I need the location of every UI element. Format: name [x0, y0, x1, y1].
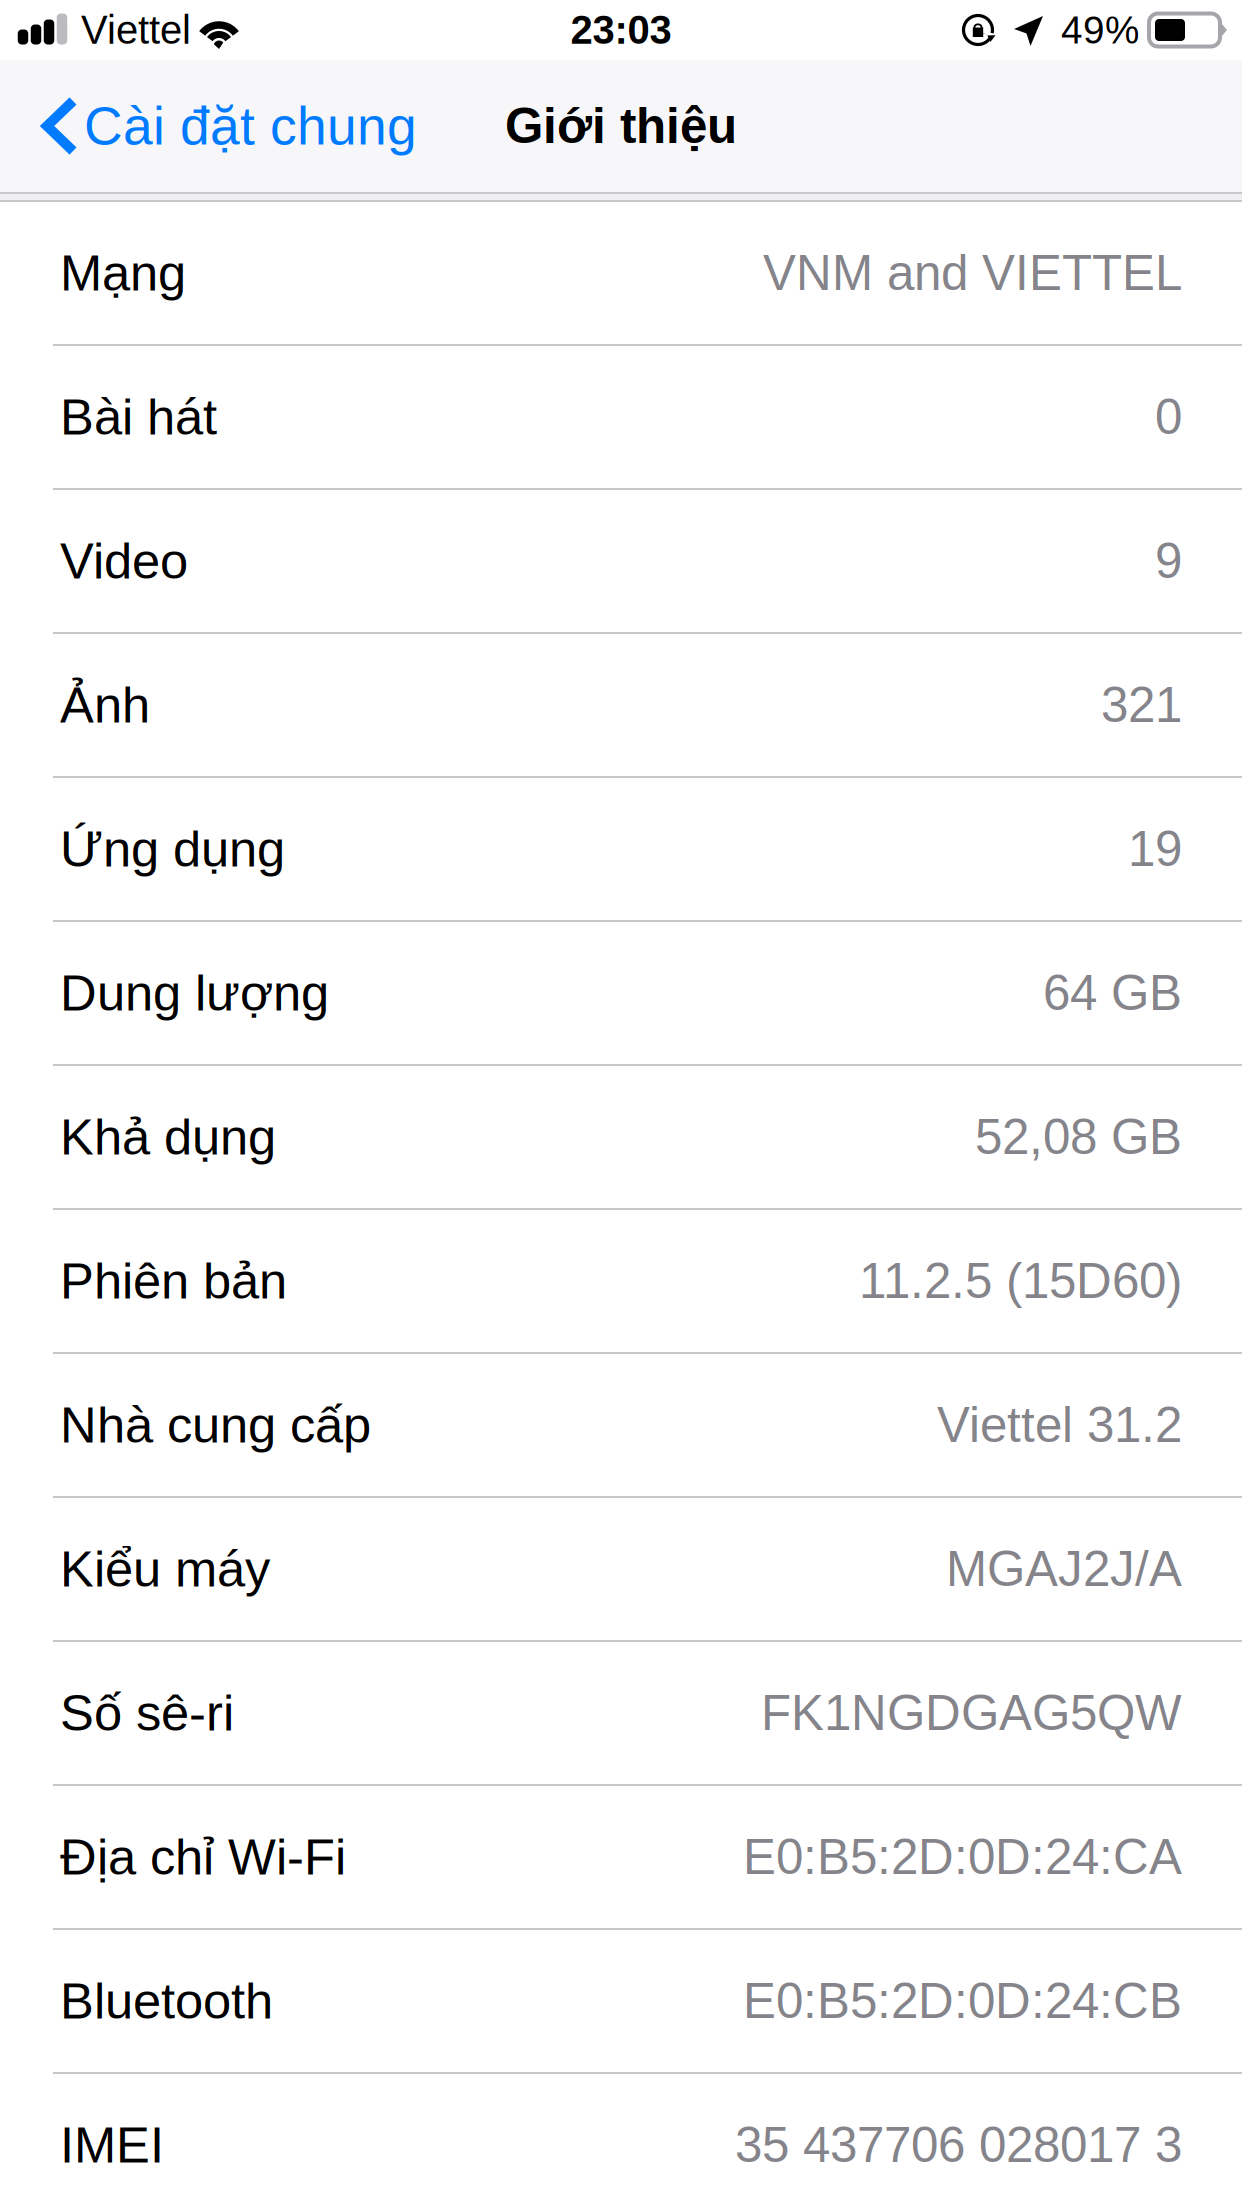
staticText: Viettel 31.2 — [937, 1397, 1182, 1452]
staticText: E0:B5:2D:0D:24:CB — [743, 1973, 1182, 2028]
staticText: E0:B5:2D:0D:24:CA — [743, 1829, 1182, 1884]
staticText: IMEI — [60, 2117, 164, 2173]
staticText: 19 — [1128, 821, 1182, 876]
button[interactable]: Bluetooth — [0, 1930, 1242, 2072]
staticText: Bài hát — [60, 389, 217, 445]
staticText: Kiểu máy — [60, 1541, 270, 1597]
button[interactable]: Số sê-ri — [0, 1642, 1242, 1784]
staticText: 11.2.5 (15D60) — [859, 1253, 1182, 1308]
button[interactable]: Cài đặt chung — [0, 60, 437, 192]
staticText: Mạng — [60, 245, 186, 301]
staticText: Ứng dụng — [60, 821, 285, 877]
staticText: Khả dụng — [60, 1109, 276, 1165]
button[interactable]: Khả dụng — [0, 1066, 1242, 1208]
staticText: Cài đặt chung — [84, 96, 417, 156]
staticText: Giới thiệu — [505, 98, 737, 153]
staticText: VNM and VIETTEL — [763, 245, 1182, 300]
button[interactable]: Mạng — [0, 202, 1242, 344]
button[interactable]: Ứng dụng — [0, 778, 1242, 920]
staticText: Số sê-ri — [60, 1685, 234, 1741]
staticText: Video — [60, 533, 188, 589]
staticText: Phiên bản — [60, 1253, 287, 1309]
staticText: Viettel — [81, 8, 191, 52]
button[interactable]: IMEI — [0, 2074, 1242, 2208]
button[interactable]: Phiên bản — [0, 1210, 1242, 1352]
button[interactable]: Nhà cung cấp — [0, 1354, 1242, 1496]
staticText: 49% — [1061, 8, 1139, 52]
staticText: 0 — [1155, 389, 1182, 444]
staticText: Bluetooth — [60, 1973, 273, 2029]
staticText: 64 GB — [1043, 965, 1182, 1020]
staticText: FK1NGDGAG5QW — [761, 1685, 1182, 1740]
button[interactable]: Ảnh — [0, 634, 1242, 776]
staticText: 52,08 GB — [975, 1109, 1182, 1164]
button[interactable]: Dung lượng — [0, 922, 1242, 1064]
button[interactable]: Video — [0, 490, 1242, 632]
staticText: MGAJ2J/A — [946, 1541, 1182, 1596]
staticText: 9 — [1155, 533, 1182, 588]
button[interactable]: Địa chỉ Wi-Fi — [0, 1786, 1242, 1928]
staticText: Dung lượng — [60, 965, 329, 1021]
button[interactable]: Bài hát — [0, 346, 1242, 488]
staticText: Ảnh — [60, 677, 150, 733]
staticText: 35 437706 028017 3 — [735, 2117, 1182, 2172]
staticText: Địa chỉ Wi-Fi — [60, 1829, 346, 1885]
staticText: 321 — [1101, 677, 1182, 732]
button[interactable]: Kiểu máy — [0, 1498, 1242, 1640]
staticText: Nhà cung cấp — [60, 1397, 371, 1453]
staticText: 23:03 — [570, 8, 671, 52]
